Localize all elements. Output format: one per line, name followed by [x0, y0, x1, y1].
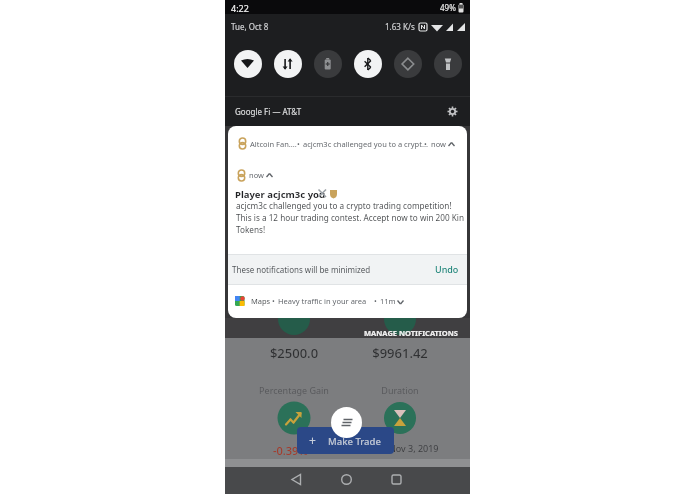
- button[interactable]: +: [297, 427, 394, 454]
- staticText: Undo: [435, 263, 459, 275]
- staticText: Altcoin Fan....: [250, 139, 297, 149]
- staticText: •: [424, 139, 427, 149]
- staticText: These notifications will be minimized: [232, 264, 371, 275]
- staticText: Google Fi — AT&T: [235, 106, 302, 117]
- staticText: Player acjcm3c you: [235, 188, 326, 201]
- staticText: Heavy traffic in your area: [278, 296, 367, 306]
- button[interactable]: [314, 50, 342, 78]
- staticText: now: [431, 139, 446, 149]
- staticText: 11m: [380, 296, 396, 306]
- staticText: Percentage Gain: [244, 384, 344, 494]
- staticText: •: [297, 139, 300, 149]
- staticText: +: [309, 432, 316, 448]
- staticText: Duration: [350, 384, 450, 494]
- button[interactable]: MANAGE NOTIFICATIONS: [343, 327, 458, 339]
- button[interactable]: Undo: [430, 259, 464, 279]
- button[interactable]: [274, 50, 302, 78]
- staticText: MANAGE NOTIFICATIONS: [364, 328, 458, 338]
- button[interactable]: [446, 105, 459, 118]
- staticText: Maps: [251, 296, 271, 306]
- button[interactable]: [281, 464, 312, 494]
- button[interactable]: [354, 50, 382, 78]
- button[interactable]: [434, 50, 462, 78]
- staticText: $2500.0: [244, 344, 344, 494]
- staticText: $9961.42: [350, 344, 450, 494]
- button[interactable]: [331, 464, 362, 494]
- button[interactable]: [228, 285, 467, 318]
- staticText: 49%: [440, 2, 456, 13]
- staticText: 4:22: [231, 2, 249, 14]
- staticText: •: [272, 296, 275, 306]
- button[interactable]: [331, 407, 362, 438]
- staticText: Tue, Oct 8: [231, 21, 269, 32]
- staticText: -0.39%: [273, 443, 308, 458]
- staticText: now: [249, 170, 264, 180]
- button[interactable]: [381, 464, 412, 494]
- button[interactable]: [234, 50, 262, 78]
- staticText: Nov 3, 2019: [389, 442, 439, 454]
- staticText: Make Trade: [328, 435, 381, 448]
- staticText: acjcm3c challenged you to a crypt...: [303, 139, 428, 149]
- staticText: •: [374, 296, 377, 306]
- staticText: acjcm3c challenged you to a crypto tradi…: [236, 200, 465, 235]
- staticText: 1.63 K/s: [385, 21, 415, 32]
- button[interactable]: [394, 50, 422, 78]
